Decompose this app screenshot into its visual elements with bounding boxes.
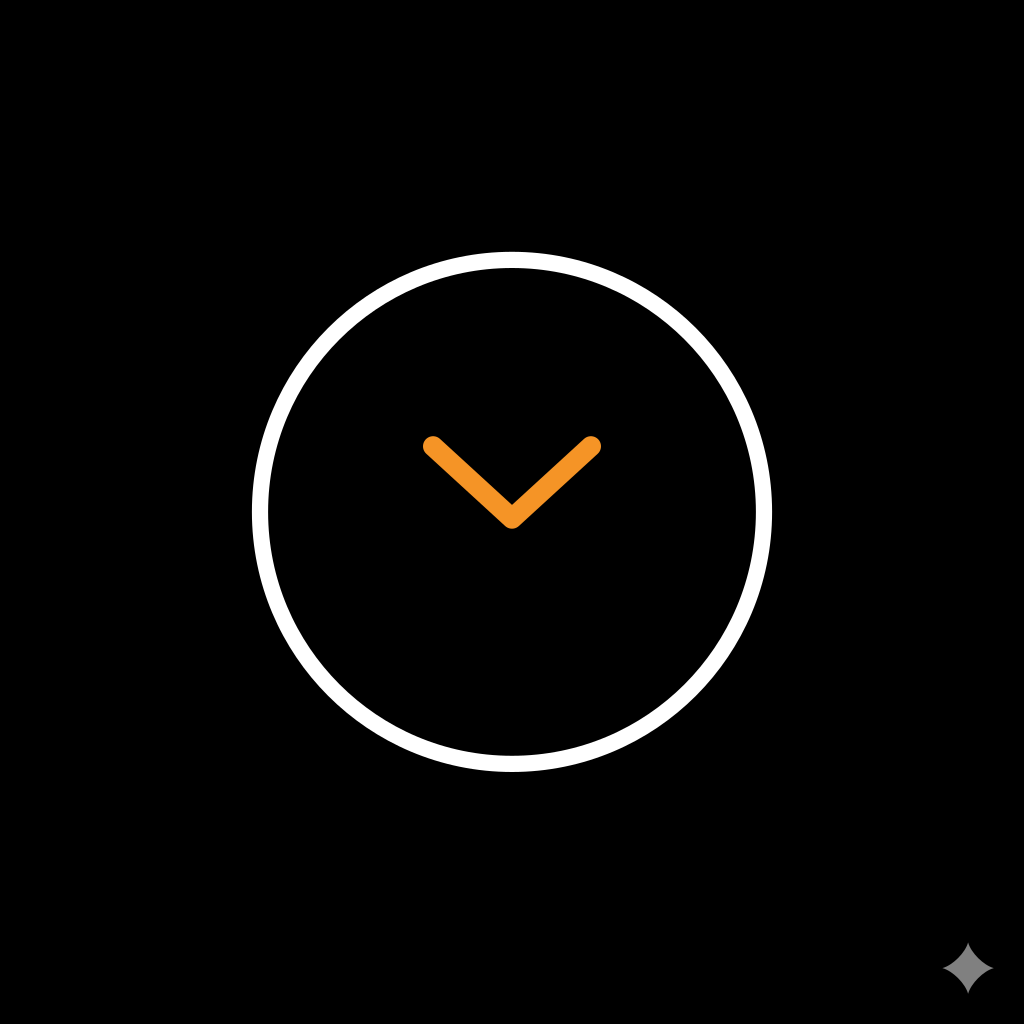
button[interactable]: Collapse	[252, 252, 772, 772]
